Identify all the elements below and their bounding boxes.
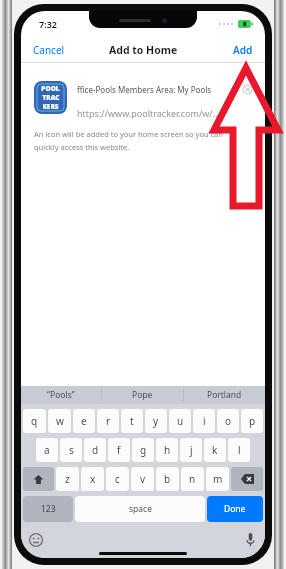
staticText: a <box>44 443 50 457</box>
button[interactable]: k <box>204 438 226 462</box>
button[interactable]: Add <box>225 39 265 61</box>
button[interactable]: p <box>241 409 263 433</box>
staticText: h <box>164 443 171 457</box>
staticText: v <box>140 472 146 486</box>
staticText: c <box>115 472 120 486</box>
staticText: https://www.pooltracker.com/w/... <box>77 107 220 119</box>
staticText: u <box>177 414 184 428</box>
staticText: s <box>69 443 74 457</box>
button[interactable]: Shift <box>23 467 54 491</box>
button[interactable]: a <box>36 438 58 462</box>
staticText: i <box>203 414 206 428</box>
button[interactable]: g <box>132 438 154 462</box>
button[interactable]: “Pools” <box>21 386 101 404</box>
button[interactable]: r <box>97 409 119 433</box>
staticText: p <box>249 414 256 428</box>
button[interactable]: h <box>156 438 178 462</box>
staticText: n <box>189 472 196 486</box>
staticText: z <box>65 472 70 486</box>
button[interactable]: Portland <box>184 386 265 404</box>
button[interactable]: n <box>181 467 204 491</box>
button[interactable]: w <box>48 409 71 433</box>
staticText: Done <box>224 503 246 515</box>
button[interactable]: Dictation <box>246 533 255 547</box>
button[interactable]: c <box>106 467 129 491</box>
staticText: Add to Home <box>109 43 178 57</box>
staticText: e <box>81 414 87 428</box>
staticText: Pope <box>132 389 153 401</box>
button[interactable]: o <box>217 409 239 433</box>
staticText: q <box>31 414 38 428</box>
staticText: r <box>106 414 111 428</box>
button[interactable]: j <box>180 438 202 462</box>
button[interactable]: Pope <box>102 386 183 404</box>
button[interactable]: m <box>206 467 229 491</box>
staticText: KERS <box>42 102 59 111</box>
staticText: l <box>238 443 241 457</box>
staticText: m <box>213 472 223 486</box>
button[interactable]: x <box>81 467 104 491</box>
button[interactable]: Cancel <box>21 39 73 61</box>
button[interactable]: z <box>56 467 79 491</box>
staticText: TRAC <box>42 93 60 102</box>
button[interactable]: 123 <box>23 496 73 522</box>
staticText: d <box>92 443 99 457</box>
staticText: j <box>190 443 193 457</box>
staticText: Portland <box>207 389 242 401</box>
button[interactable]: v <box>131 467 154 491</box>
button[interactable]: b <box>156 467 179 491</box>
staticText: o <box>225 414 232 428</box>
button[interactable]: Clear text <box>243 85 252 94</box>
button[interactable]: y <box>145 409 167 433</box>
staticText: k <box>212 443 218 457</box>
staticText: x <box>90 472 96 486</box>
staticText: 123 <box>41 503 56 515</box>
button[interactable]: space <box>75 496 205 522</box>
staticText: 7:32 <box>39 18 57 30</box>
button[interactable]: u <box>169 409 191 433</box>
staticText: Cancel <box>33 43 65 57</box>
staticText: quickly access this website. <box>34 142 130 152</box>
button[interactable]: s <box>60 438 82 462</box>
button[interactable]: d <box>84 438 106 462</box>
button[interactable]: e <box>73 409 95 433</box>
button[interactable]: t <box>121 409 143 433</box>
staticText: b <box>164 472 171 486</box>
staticText: An icon will be added to your home scree… <box>34 129 223 139</box>
staticText: “Pools” <box>47 389 75 401</box>
button[interactable]: q <box>23 409 46 433</box>
staticText: POOL <box>41 84 60 93</box>
staticText: f <box>117 443 121 457</box>
button[interactable]: i <box>193 409 215 433</box>
button[interactable]: f <box>108 438 130 462</box>
staticText: w <box>56 414 64 428</box>
staticText: y <box>153 414 159 428</box>
staticText: space <box>129 503 152 515</box>
staticText: Add <box>233 43 253 57</box>
staticText: g <box>140 443 147 457</box>
button[interactable]: POOL <box>34 81 67 114</box>
button[interactable]: l <box>228 438 250 462</box>
button[interactable]: Done <box>207 496 263 522</box>
button[interactable]: Emoji keyboard <box>29 533 43 547</box>
staticText: ffice-Pools Members Area: My Pools <box>77 84 239 95</box>
button[interactable]: Backspace <box>231 467 263 491</box>
staticText: t <box>130 414 134 428</box>
